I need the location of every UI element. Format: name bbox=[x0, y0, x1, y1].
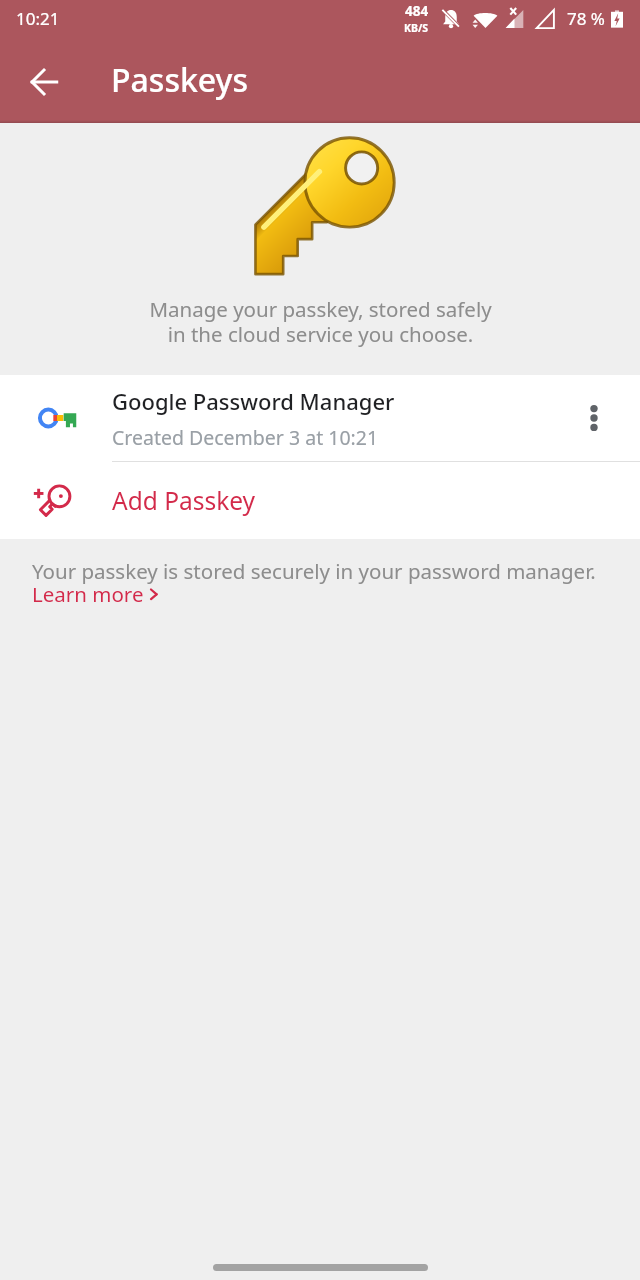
button[interactable]: Google Password Manager bbox=[0, 375, 640, 461]
staticText: Your passkey is stored securely in your … bbox=[32, 557, 596, 585]
button[interactable]: More options bbox=[549, 375, 640, 461]
staticText: KB/S bbox=[404, 21, 429, 35]
staticText: Passkeys bbox=[111, 58, 248, 102]
button[interactable]: Add Passkey bbox=[0, 462, 640, 539]
staticText: 484 bbox=[405, 2, 429, 20]
staticText: Manage your passkey, stored safely in th… bbox=[149, 295, 492, 348]
button[interactable]: Learn more bbox=[32, 580, 160, 608]
staticText: 10:21 bbox=[16, 7, 60, 30]
staticText: Google Password Manager bbox=[112, 386, 395, 416]
staticText: Learn more bbox=[32, 580, 144, 608]
button[interactable]: Back bbox=[20, 58, 68, 106]
staticText: Created December 3 at 10:21 bbox=[112, 424, 379, 451]
staticText: Add Passkey bbox=[112, 484, 256, 517]
staticText: 78 % bbox=[567, 7, 605, 30]
